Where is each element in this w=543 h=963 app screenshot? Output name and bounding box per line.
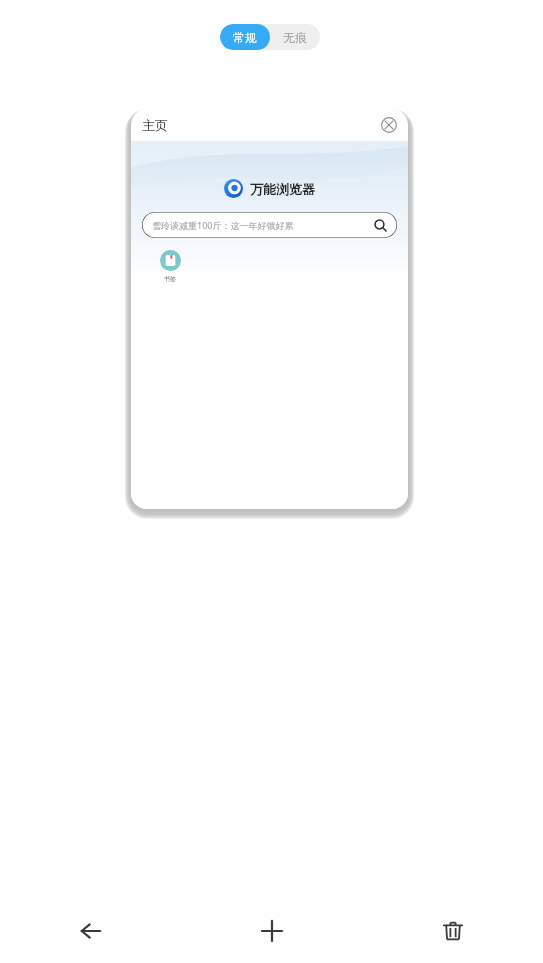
staticText: 无痕: [283, 30, 307, 45]
button[interactable]: 常规: [220, 24, 270, 50]
staticText: 万能浏览器: [250, 181, 315, 197]
staticText: 雪玲谈减重100斤：这一年好饿好累: [152, 219, 294, 231]
button[interactable]: Search: [372, 217, 388, 233]
button[interactable]: 雪玲谈减重100斤：这一年好饿好累: [142, 212, 397, 238]
staticText: 书签: [164, 275, 176, 283]
button[interactable]: 无痕: [270, 24, 320, 50]
staticText: 主页: [142, 117, 168, 133]
button[interactable]: 书签: [150, 250, 190, 283]
staticText: 常规: [233, 30, 257, 45]
button[interactable]: 主页: [131, 109, 408, 509]
button[interactable]: Back: [0, 901, 181, 961]
button[interactable]: New tab: [181, 901, 362, 961]
button[interactable]: Close tab: [378, 114, 400, 136]
button[interactable]: Close all tabs: [362, 901, 543, 961]
